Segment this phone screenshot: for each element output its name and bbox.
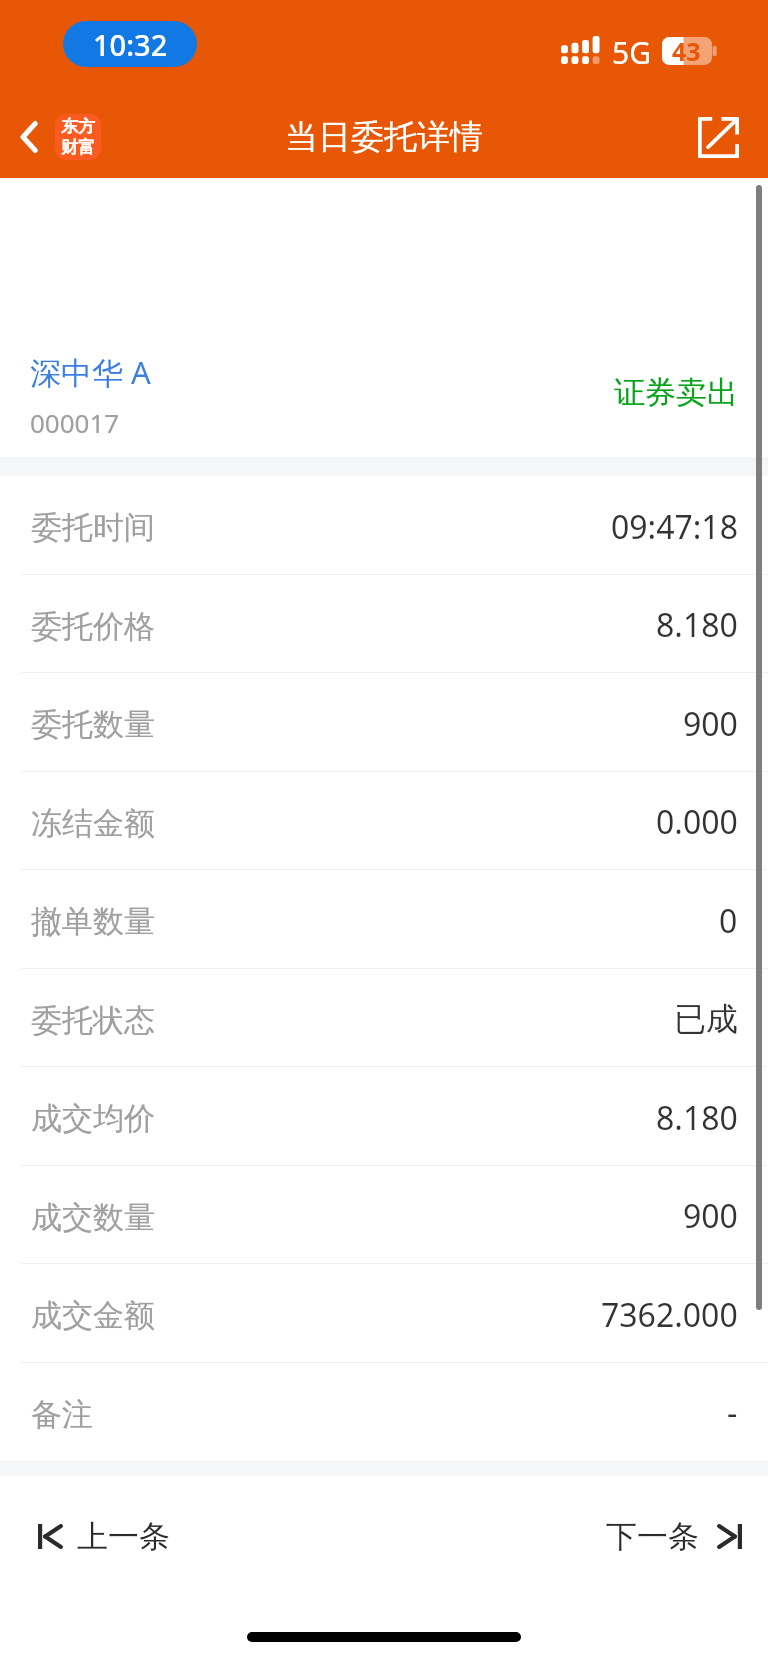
staticText: 东方 — [61, 116, 95, 137]
staticText: 900 — [683, 702, 738, 746]
staticText: 财富 — [61, 137, 95, 158]
staticText: 委托状态 — [31, 1001, 155, 1040]
staticText: 冻结金额 — [31, 804, 155, 843]
staticText: 10:32 — [93, 25, 168, 64]
staticText: 成交金额 — [31, 1296, 155, 1335]
button[interactable]: 委托时间 — [0, 476, 768, 575]
staticText: 000017 — [30, 405, 120, 440]
button[interactable]: 冻结金额 — [0, 772, 768, 870]
staticText: 当日委托详情 — [285, 116, 483, 158]
button[interactable]: 撤单数量 — [0, 870, 768, 969]
staticText: 上一条 — [77, 1517, 170, 1556]
staticText: 8.180 — [656, 1096, 738, 1140]
button[interactable]: 备注 — [0, 1363, 768, 1461]
staticText: 8.180 — [656, 603, 738, 647]
staticText: 委托时间 — [31, 508, 155, 547]
staticText: 7362.000 — [601, 1293, 738, 1337]
staticText: 0.000 — [656, 800, 738, 844]
staticText: 5G — [612, 32, 651, 73]
staticText: 900 — [683, 1194, 738, 1238]
button[interactable]: 下一条 — [586, 1503, 768, 1570]
button[interactable]: 上一条 — [0, 1503, 190, 1570]
button[interactable]: Back — [0, 106, 107, 168]
button[interactable]: 委托状态 — [0, 969, 768, 1067]
staticText: 撤单数量 — [31, 902, 155, 941]
staticText: 委托价格 — [31, 607, 155, 646]
staticText: 备注 — [31, 1395, 93, 1434]
staticText: - — [727, 1391, 738, 1435]
staticText: 成交均价 — [31, 1099, 155, 1138]
button[interactable]: 成交数量 — [0, 1166, 768, 1264]
button[interactable]: 成交均价 — [0, 1067, 768, 1166]
staticText: 43 — [672, 34, 701, 62]
staticText: 0 — [719, 899, 738, 943]
staticText: 证券卖出 — [614, 373, 738, 412]
staticText: 深中华 A — [30, 351, 151, 393]
button[interactable]: 成交金额 — [0, 1264, 768, 1363]
staticText: 委托数量 — [31, 705, 155, 744]
button[interactable]: 委托数量 — [0, 673, 768, 772]
staticText: 成交数量 — [31, 1198, 155, 1237]
button[interactable]: 委托价格 — [0, 575, 768, 673]
staticText: 09:47:18 — [611, 505, 738, 549]
staticText: 下一条 — [606, 1517, 699, 1556]
staticText: 已成 — [674, 999, 738, 1039]
button[interactable]: Share — [688, 107, 748, 167]
